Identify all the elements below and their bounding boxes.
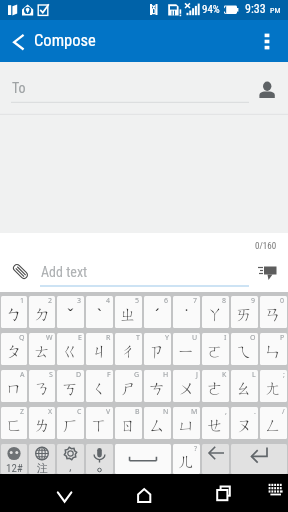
button[interactable]: C xyxy=(57,407,84,439)
staticText: 0 xyxy=(280,296,285,306)
staticText: ㄏ xyxy=(62,415,79,436)
staticText: M xyxy=(191,407,198,417)
button[interactable]: I xyxy=(202,333,229,365)
staticText: N xyxy=(163,407,169,417)
staticText: ㄥ xyxy=(265,415,282,436)
staticText: U xyxy=(192,333,198,343)
staticText: ㄠ xyxy=(236,378,253,399)
button[interactable]: ? xyxy=(173,444,200,474)
button[interactable]: F xyxy=(86,370,113,402)
button[interactable]: 0 xyxy=(260,296,287,328)
button[interactable]: 3 xyxy=(57,296,84,328)
button[interactable]: / xyxy=(260,407,287,439)
button[interactable]: 4 xyxy=(86,296,113,328)
button[interactable]: More options xyxy=(252,20,288,62)
button[interactable]: Change language xyxy=(29,444,55,474)
button[interactable]: Settings xyxy=(57,444,84,474)
button[interactable]: D xyxy=(57,370,84,402)
button[interactable]: J xyxy=(173,370,200,402)
staticText: ˊ xyxy=(155,303,160,325)
button[interactable]: U xyxy=(173,333,200,365)
staticText: 3 xyxy=(77,296,82,306)
staticText: A xyxy=(20,370,25,380)
button[interactable]: H xyxy=(144,370,171,402)
button[interactable]: 8 xyxy=(202,296,229,328)
staticText: ㄡ xyxy=(236,415,253,436)
button[interactable]: Space xyxy=(115,444,171,474)
staticText: ㄝ xyxy=(207,415,224,436)
button[interactable]: Y xyxy=(144,333,171,365)
staticText: ㄐ xyxy=(91,341,108,362)
button[interactable]: 9 xyxy=(231,296,258,328)
staticText: ㄌ xyxy=(34,415,51,436)
button[interactable]: Voice input xyxy=(86,444,113,474)
staticText: 12# xyxy=(6,462,23,474)
button[interactable]: Z xyxy=(1,407,27,439)
button[interactable]: N xyxy=(144,407,171,439)
button[interactable]: 1 xyxy=(1,296,27,328)
staticText: 4 xyxy=(106,296,111,306)
staticText: ; xyxy=(283,370,285,380)
staticText: ㄓ xyxy=(120,304,137,325)
staticText: ㄙ xyxy=(149,415,166,436)
button[interactable]: Change keyboard xyxy=(262,478,288,508)
staticText: D xyxy=(76,370,82,380)
staticText: Add text xyxy=(41,264,88,280)
staticText: P xyxy=(280,333,285,343)
staticText: . xyxy=(254,407,256,417)
staticText: ㄛ xyxy=(207,341,224,362)
button[interactable]: Q xyxy=(1,333,27,365)
button[interactable]: W xyxy=(29,333,55,365)
button[interactable]: M xyxy=(173,407,200,439)
button[interactable]: . xyxy=(231,407,258,439)
button[interactable]: T xyxy=(115,333,142,365)
button[interactable]: L xyxy=(231,370,258,402)
button[interactable]: 6 xyxy=(144,296,171,328)
button[interactable]: R xyxy=(86,333,113,365)
button[interactable]: Home xyxy=(126,478,162,508)
staticText: / xyxy=(282,407,285,417)
staticText: L xyxy=(252,370,256,380)
staticText: 6 xyxy=(164,296,169,306)
button[interactable]: S xyxy=(29,370,55,402)
button[interactable]: Back xyxy=(46,478,82,508)
staticText: Q xyxy=(19,333,25,343)
staticText: 9:33 xyxy=(245,2,266,16)
button[interactable]: Recent apps xyxy=(206,478,242,508)
button[interactable]: P xyxy=(260,333,287,365)
button[interactable]: ; xyxy=(260,370,287,402)
staticText: F xyxy=(107,370,111,380)
button[interactable]: K xyxy=(202,370,229,402)
button[interactable]: G xyxy=(115,370,142,402)
button[interactable]: X xyxy=(29,407,55,439)
button[interactable]: O xyxy=(231,333,258,365)
button[interactable]: 5 xyxy=(115,296,142,328)
button[interactable]: Backspace xyxy=(202,444,229,474)
button[interactable]: Navigate up xyxy=(2,20,35,62)
staticText: 9 xyxy=(251,296,256,306)
staticText: , xyxy=(225,407,227,417)
button[interactable]: V xyxy=(86,407,113,439)
staticText: ㄦ xyxy=(178,451,195,472)
button[interactable]: A xyxy=(1,370,27,402)
staticText: ㄖ xyxy=(120,415,137,436)
button[interactable]: E xyxy=(57,333,84,365)
staticText: 5 xyxy=(135,296,140,306)
button[interactable]: 2 xyxy=(29,296,55,328)
staticText: 0/160 xyxy=(255,241,277,252)
staticText: ㄅ xyxy=(6,304,23,325)
button[interactable]: B xyxy=(115,407,142,439)
staticText: O xyxy=(250,333,256,343)
staticText: ㄧ xyxy=(178,341,195,362)
button[interactable]: 7 xyxy=(173,296,200,328)
staticText: E xyxy=(78,333,82,343)
staticText: ㄟ xyxy=(236,341,253,362)
staticText: ㄍ xyxy=(62,341,79,362)
staticText: ㄤ xyxy=(265,378,282,399)
button[interactable]: Symbols xyxy=(1,444,27,474)
button[interactable]: , xyxy=(202,407,229,439)
staticText: To xyxy=(12,80,26,96)
staticText: , xyxy=(69,459,72,474)
staticText: ㄔ xyxy=(120,341,137,362)
button[interactable]: Enter xyxy=(231,444,287,474)
